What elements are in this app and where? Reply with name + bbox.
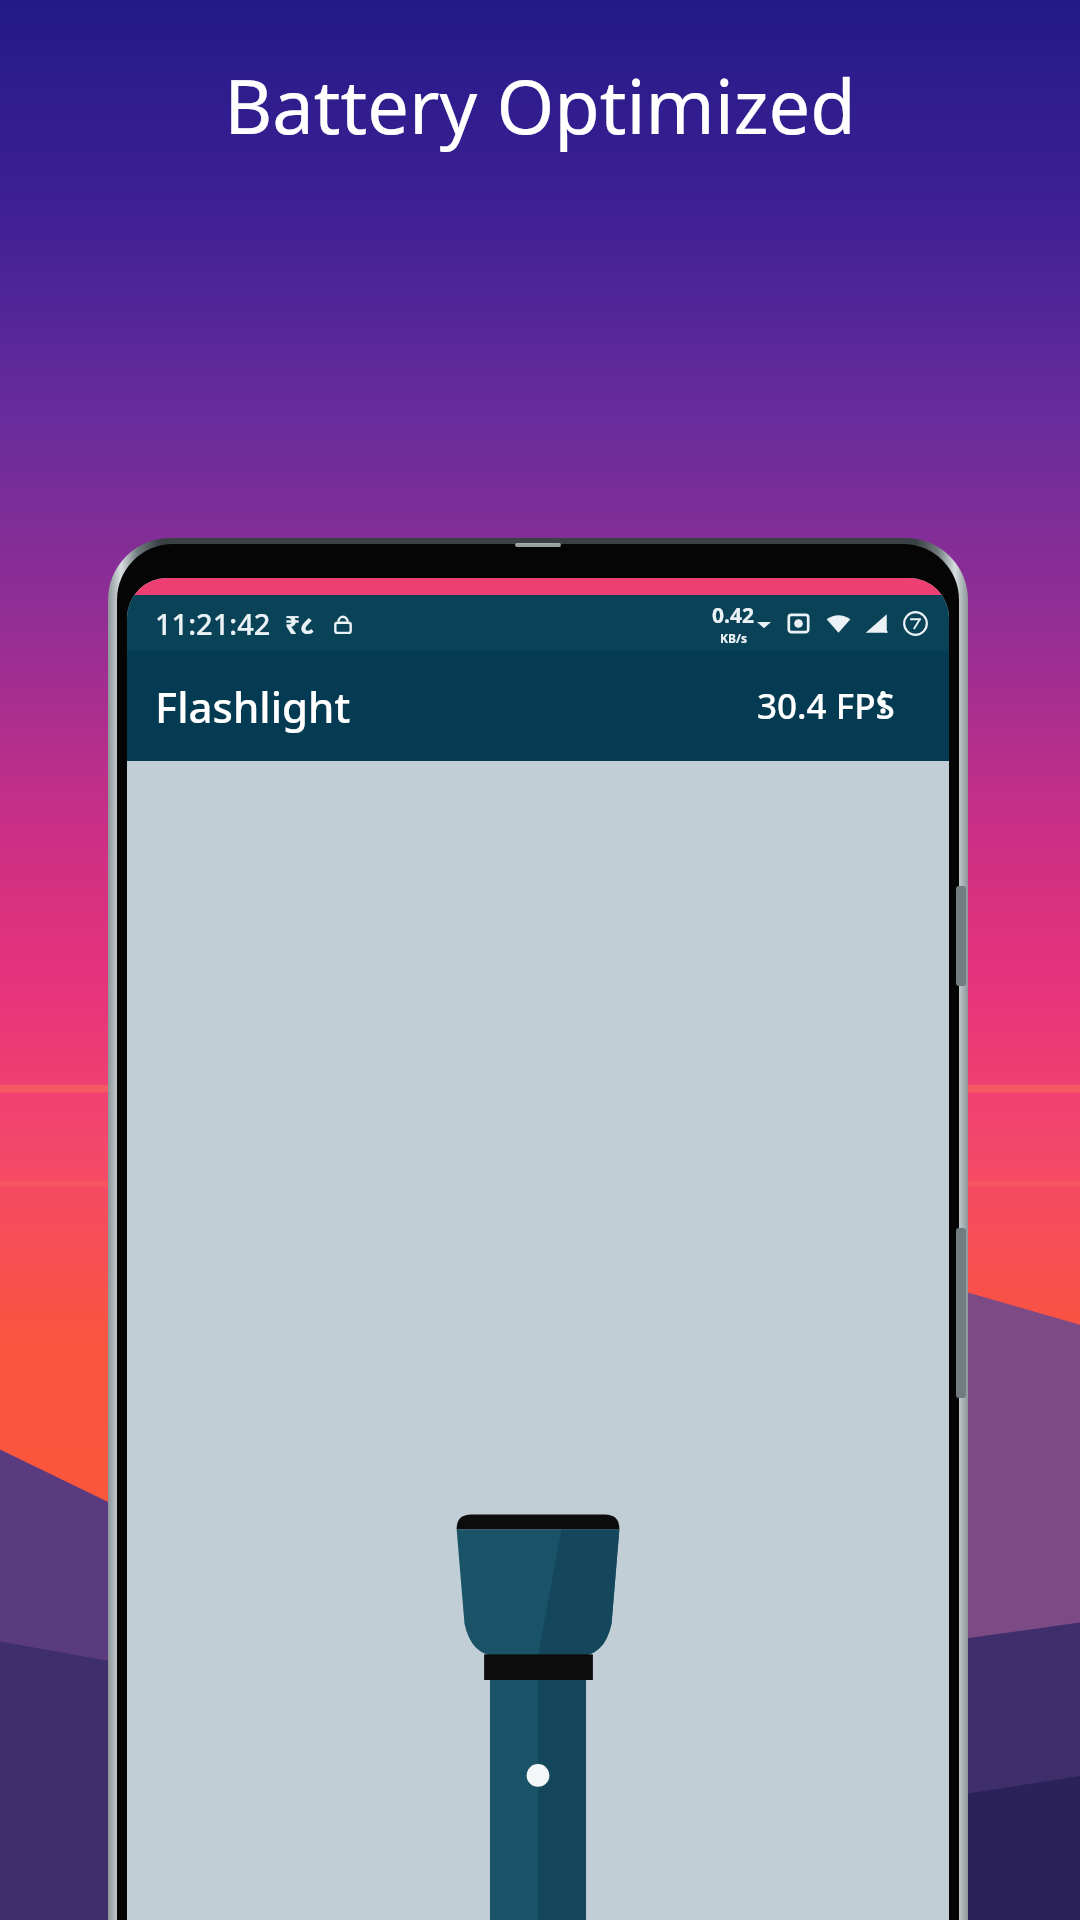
staticText: 30.4 FPS [757,682,895,730]
staticText: 0.42 [712,601,754,630]
staticText: KB/s [720,630,747,646]
button[interactable]: Flashlight [440,1508,636,1920]
staticText: ₹८ [285,606,315,641]
staticText: 11:21:42 [155,604,271,643]
staticText: Battery Optimized [224,55,856,156]
button[interactable]: More options [861,684,905,728]
staticText: Flashlight [155,678,351,735]
